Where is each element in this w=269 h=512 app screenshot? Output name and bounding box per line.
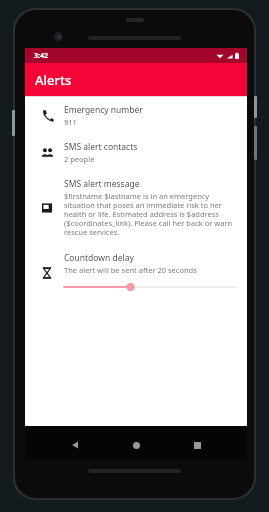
staticText: Emergency number bbox=[64, 104, 143, 116]
button[interactable]: Back bbox=[64, 434, 86, 456]
button[interactable]: Countdown delay slider bbox=[64, 281, 237, 293]
staticText: 3:42 bbox=[34, 51, 48, 61]
staticText: 2 people bbox=[64, 154, 95, 164]
staticText: SMS alert message bbox=[64, 178, 140, 190]
staticText: The alert will be sent after 20 seconds bbox=[64, 265, 197, 275]
button[interactable]: Emergency number bbox=[25, 97, 247, 134]
button[interactable]: Home bbox=[125, 434, 147, 456]
staticText: Alerts bbox=[35, 71, 72, 89]
staticText: 911 bbox=[64, 117, 77, 127]
button[interactable]: SMS alert contacts bbox=[25, 134, 247, 171]
button[interactable]: Recent apps bbox=[186, 434, 208, 456]
button[interactable]: Countdown delay bbox=[25, 245, 247, 300]
staticText: SMS alert contacts bbox=[64, 141, 138, 153]
staticText: Countdown delay bbox=[64, 252, 134, 264]
staticText: $firstname $lastname is in an emergency … bbox=[64, 191, 237, 238]
button[interactable]: SMS alert message bbox=[25, 171, 247, 245]
